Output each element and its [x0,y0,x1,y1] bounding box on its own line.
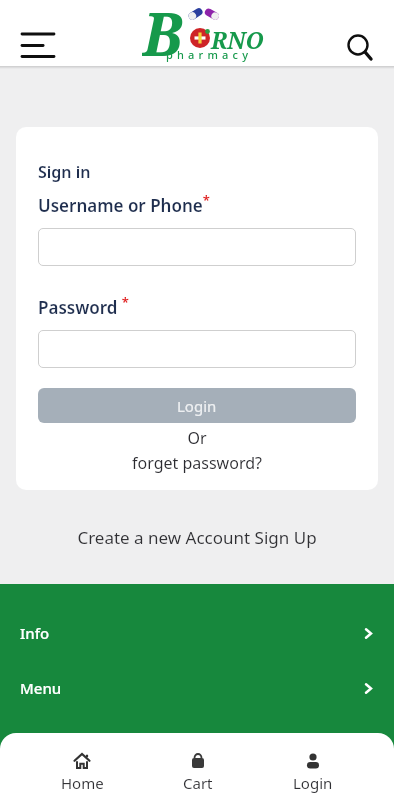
staticText: Menu [20,678,62,698]
button[interactable]: Login [38,388,356,423]
button[interactable]: Home [24,733,140,800]
button[interactable] [38,228,356,266]
staticText: Cart [183,773,213,793]
button[interactable]: Cart [140,733,255,800]
staticText: Home [61,773,104,793]
staticText: Login [293,773,333,793]
staticText: Username or Phone* [38,191,210,217]
button[interactable] [337,24,381,68]
button[interactable] [38,330,356,368]
staticText: RNO [211,24,264,55]
button[interactable]: Info [0,617,394,649]
staticText: Password * [38,293,129,319]
staticText: pharmacy [166,47,253,62]
button[interactable]: Menu [0,672,394,704]
staticText: Login [177,396,217,416]
staticText: B [142,0,183,58]
button[interactable]: Create a new Account Sign Up [0,526,394,549]
button[interactable]: forget password? [38,452,356,474]
button[interactable] [15,23,59,67]
button[interactable]: Login [255,733,370,800]
staticText: Or [38,427,356,449]
staticText: Sign in [38,161,91,183]
staticText: Info [20,623,50,643]
